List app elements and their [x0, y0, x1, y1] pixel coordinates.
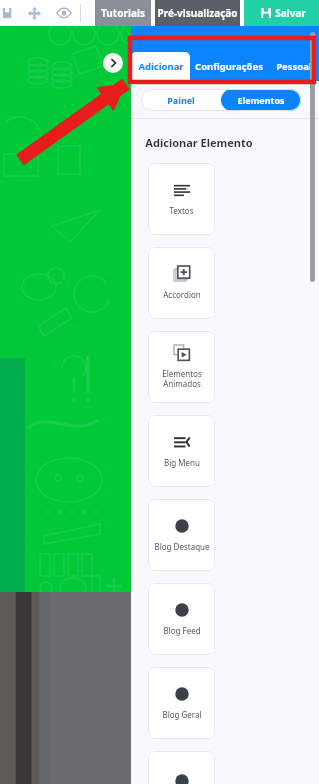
button[interactable]: Move [24, 3, 44, 23]
button[interactable]: Elementos [221, 89, 301, 111]
staticText: Configurações [195, 60, 263, 73]
staticText: Blog Feed [163, 625, 201, 636]
staticText: Salvar [275, 6, 306, 20]
button[interactable]: Elementos Animados [148, 331, 215, 403]
button[interactable]: Salvar [244, 0, 319, 26]
staticText: Big Menu [164, 457, 200, 468]
staticText: Blog Destaque [154, 541, 210, 552]
staticText: Painel [167, 94, 195, 106]
staticText: Pré-visualização [157, 6, 238, 20]
button[interactable]: Textos [148, 163, 215, 235]
staticText: Elementos Animados [162, 368, 202, 389]
button[interactable]: Blog Destaque [148, 499, 215, 571]
button[interactable]: Painel [141, 89, 221, 111]
button[interactable]: Tutoriais [95, 0, 151, 26]
button[interactable]: Accordion [148, 247, 215, 319]
staticText: Pessoal [276, 60, 312, 73]
staticText: Adicionar Elemento [145, 135, 253, 150]
button[interactable]: Preview eye [54, 3, 74, 23]
button[interactable]: Configurações [190, 52, 268, 81]
button[interactable]: Blog Feed [148, 583, 215, 655]
staticText: Accordion [163, 289, 201, 300]
button[interactable]: Add element [148, 751, 215, 784]
button[interactable]: Pessoal [268, 52, 319, 81]
other: Save layout [0, 6, 12, 20]
button[interactable]: Blog Geral [148, 667, 215, 739]
staticText: Elementos [237, 94, 285, 106]
staticText: Blog Geral [162, 709, 202, 720]
button[interactable]: Pré-visualização [155, 0, 240, 26]
button[interactable]: Big Menu [148, 415, 215, 487]
button[interactable]: Adicionar [131, 52, 190, 81]
staticText: Textos [169, 205, 194, 216]
staticText: Tutoriais [101, 6, 145, 20]
staticText: Adicionar [138, 60, 184, 73]
button[interactable]: Collapse panel [103, 53, 123, 73]
